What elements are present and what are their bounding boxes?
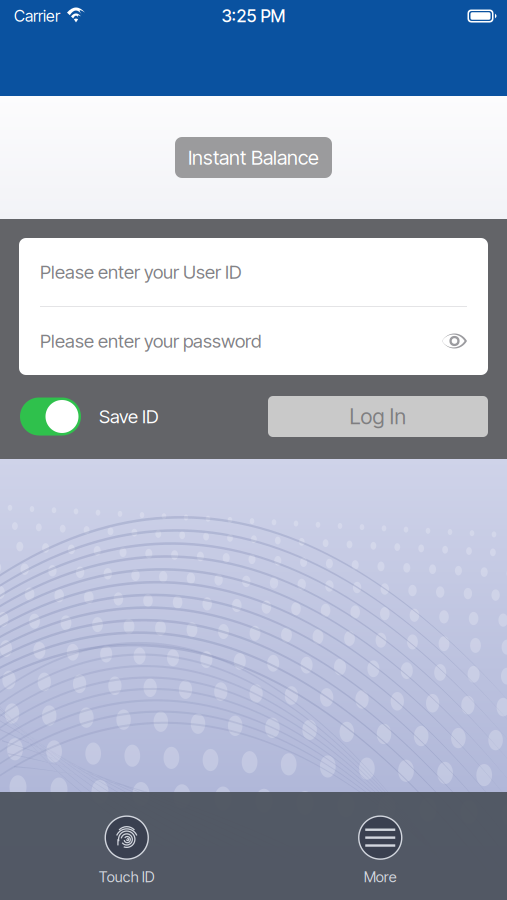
staticText: Log In xyxy=(349,404,406,429)
staticText: Please enter your password xyxy=(40,330,261,352)
button[interactable]: Log In xyxy=(268,396,488,437)
button[interactable]: Please enter your User ID xyxy=(19,238,488,306)
staticText: Please enter your User ID xyxy=(40,261,242,283)
staticText: Instant Balance xyxy=(188,145,319,170)
button[interactable]: More xyxy=(332,815,428,886)
staticText: Touch ID xyxy=(99,868,155,886)
staticText: More xyxy=(364,868,397,886)
staticText: 3:25 PM xyxy=(221,5,285,26)
button[interactable]: Touch ID xyxy=(79,815,175,886)
staticText: Save ID xyxy=(99,405,159,428)
staticText: Carrier xyxy=(14,6,60,26)
button[interactable]: Instant Balance xyxy=(175,137,332,178)
button[interactable]: Please enter your password xyxy=(19,307,488,375)
button[interactable]: Save ID xyxy=(20,397,159,435)
